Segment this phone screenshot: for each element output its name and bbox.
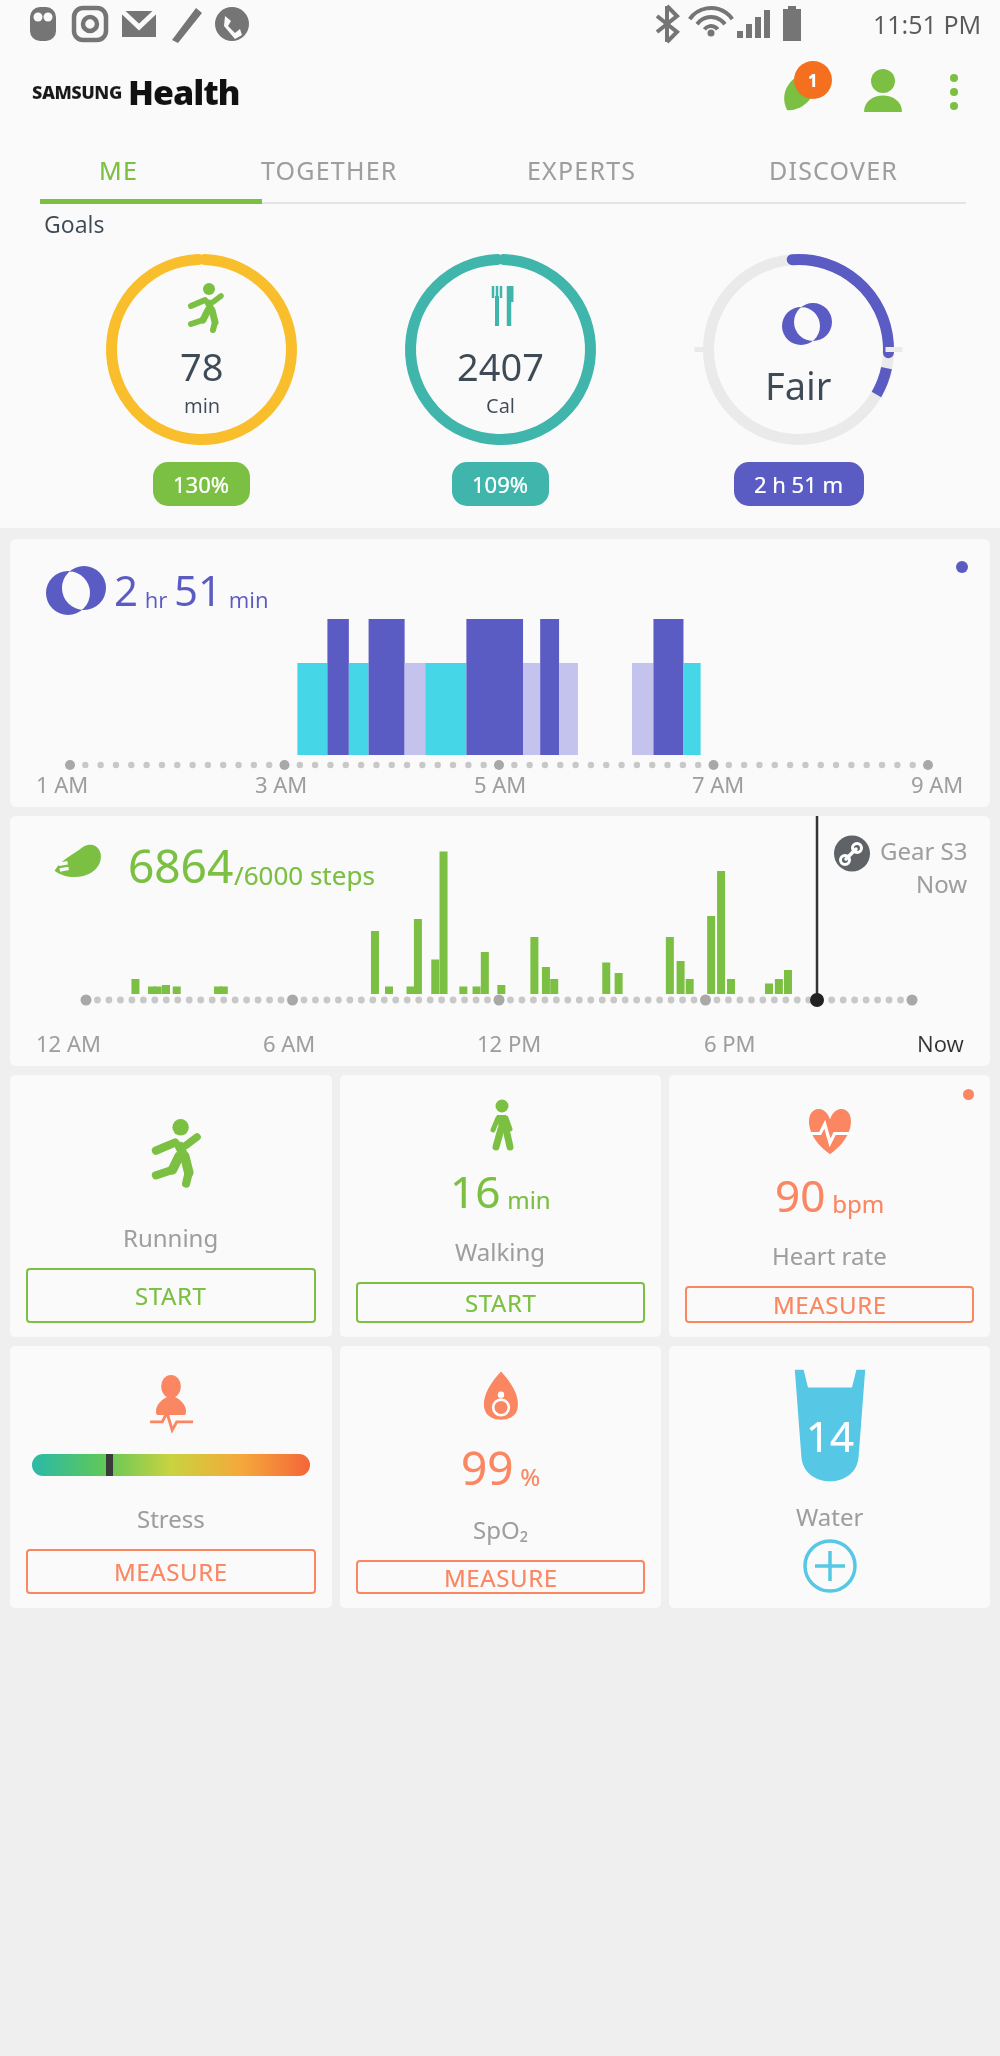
staticText: MEASURE bbox=[773, 1288, 887, 1321]
button[interactable]: ME bbox=[40, 136, 197, 204]
button[interactable]: 2 bbox=[10, 539, 990, 807]
button[interactable]: Running bbox=[10, 1075, 332, 1337]
button[interactable]: 14 bbox=[669, 1346, 990, 1608]
staticText: ME bbox=[99, 153, 138, 187]
staticText: MEASURE bbox=[114, 1555, 228, 1588]
button[interactable]: START bbox=[26, 1268, 316, 1323]
staticText: Health bbox=[128, 69, 240, 115]
staticText: min bbox=[184, 392, 221, 419]
staticText: START bbox=[465, 1286, 537, 1319]
button[interactable]: Notifications bbox=[772, 61, 834, 123]
staticText: 2 h 51 m bbox=[754, 469, 844, 499]
button[interactable]: More options bbox=[928, 66, 980, 118]
button[interactable]: 99 bbox=[340, 1346, 661, 1608]
button[interactable]: 78 bbox=[105, 253, 298, 506]
button[interactable]: DISCOVER bbox=[701, 136, 966, 204]
staticText: MEASURE bbox=[444, 1561, 558, 1594]
staticText: Now bbox=[917, 1028, 964, 1058]
staticText: hr bbox=[139, 584, 174, 614]
staticText: 51 bbox=[174, 561, 223, 618]
staticText: 109% bbox=[472, 469, 529, 499]
staticText: % bbox=[514, 1460, 541, 1493]
staticText: Cal bbox=[486, 392, 516, 419]
staticText: TOGETHER bbox=[261, 153, 398, 187]
button[interactable]: MEASURE bbox=[26, 1549, 316, 1594]
button[interactable]: 16 bbox=[340, 1075, 661, 1337]
staticText: DISCOVER bbox=[769, 153, 899, 187]
staticText: 6864 bbox=[128, 834, 234, 897]
staticText: START bbox=[135, 1279, 207, 1312]
staticText: SAMSUNG bbox=[32, 80, 122, 105]
button[interactable]: Profile bbox=[854, 63, 912, 121]
staticText: 130% bbox=[173, 469, 230, 499]
staticText: 2407 bbox=[457, 340, 544, 392]
staticText: 1 AM bbox=[36, 769, 89, 799]
staticText: Goals bbox=[44, 208, 105, 239]
staticText: EXPERTS bbox=[527, 153, 637, 187]
staticText: min bbox=[501, 1183, 551, 1216]
staticText: 6 AM bbox=[263, 1028, 316, 1058]
staticText: 5 AM bbox=[474, 769, 527, 799]
staticText: 9 AM bbox=[911, 769, 964, 799]
button[interactable]: MEASURE bbox=[685, 1286, 974, 1323]
staticText: 6 PM bbox=[704, 1028, 756, 1058]
staticText: min bbox=[223, 584, 269, 614]
staticText: Now bbox=[916, 867, 968, 900]
staticText: 90 bbox=[775, 1165, 826, 1225]
staticText: 14 bbox=[806, 1407, 855, 1464]
staticText: Water bbox=[796, 1500, 864, 1533]
staticText: 1 bbox=[808, 69, 818, 92]
button[interactable]: 90 bbox=[669, 1075, 990, 1337]
button[interactable]: MEASURE bbox=[356, 1560, 645, 1594]
staticText: 12 PM bbox=[477, 1028, 542, 1058]
button[interactable]: 2407 bbox=[404, 253, 597, 506]
staticText: Running bbox=[123, 1221, 219, 1254]
button[interactable]: START bbox=[356, 1282, 645, 1323]
staticText: /6000 steps bbox=[234, 857, 375, 892]
staticText: 99 bbox=[461, 1436, 514, 1499]
button[interactable]: Stress bbox=[10, 1346, 332, 1608]
staticText: Fair bbox=[765, 359, 832, 411]
staticText: 7 AM bbox=[692, 769, 745, 799]
staticText: Heart rate bbox=[772, 1239, 887, 1272]
staticText: 3 AM bbox=[255, 769, 308, 799]
staticText: 2 bbox=[114, 561, 139, 618]
button[interactable]: 2 h 51 m bbox=[734, 462, 864, 506]
button[interactable]: 109% bbox=[452, 462, 549, 506]
button[interactable]: 130% bbox=[153, 462, 250, 506]
button[interactable]: Add water bbox=[802, 1538, 858, 1594]
staticText: SpO₂ bbox=[473, 1513, 529, 1546]
button[interactable]: TOGETHER bbox=[197, 136, 462, 204]
staticText: 11:51 PM bbox=[873, 7, 982, 41]
staticText: 16 bbox=[450, 1161, 501, 1221]
button[interactable]: EXPERTS bbox=[462, 136, 701, 204]
staticText: Stress bbox=[137, 1502, 205, 1535]
staticText: bpm bbox=[826, 1187, 885, 1220]
staticText: Gear S3 bbox=[880, 834, 968, 867]
button[interactable]: Fair bbox=[702, 253, 895, 506]
button[interactable]: 6864 bbox=[10, 816, 990, 1066]
staticText: 12 AM bbox=[36, 1028, 101, 1058]
staticText: Walking bbox=[455, 1235, 546, 1268]
staticText: 78 bbox=[180, 340, 224, 392]
